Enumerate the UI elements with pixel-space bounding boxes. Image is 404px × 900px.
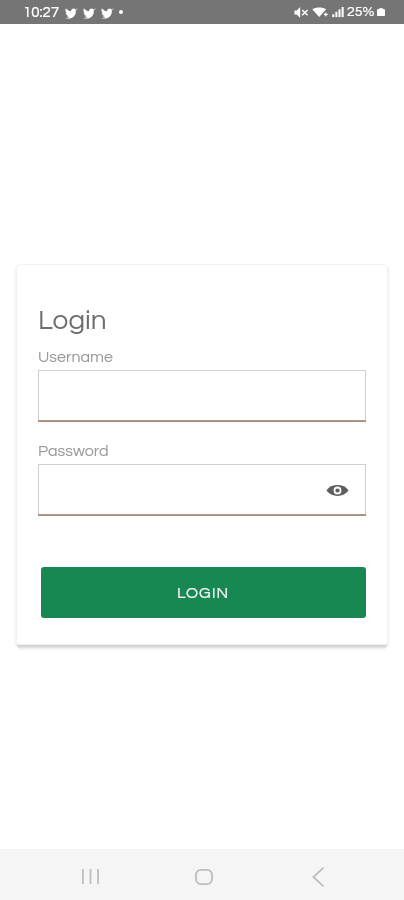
staticText: Password [38, 443, 109, 459]
button[interactable]: Password field [38, 464, 366, 516]
staticText: LOGIN [177, 585, 230, 601]
button[interactable]: Home [170, 853, 237, 900]
staticText: 25% [347, 5, 375, 19]
button[interactable]: LOGIN [41, 567, 366, 618]
button[interactable]: Username field [38, 370, 366, 422]
button[interactable]: Recent apps [57, 853, 124, 900]
button[interactable]: Back [284, 853, 351, 900]
staticText: Login [38, 306, 107, 335]
staticText: 10:27 [23, 5, 60, 20]
button[interactable]: Show password [326, 483, 349, 498]
staticText: Username [38, 349, 113, 365]
